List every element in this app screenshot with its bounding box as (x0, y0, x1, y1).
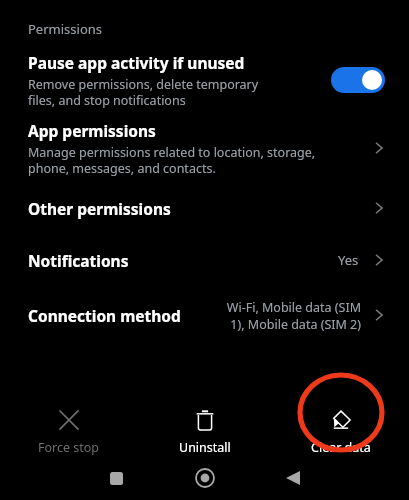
staticText: Uninstall (179, 439, 231, 456)
button[interactable]: Pause app activity if unused (0, 46, 409, 114)
button[interactable]: Connection method (0, 286, 409, 344)
button[interactable]: Clear data (273, 407, 409, 456)
staticText: Remove permissions, delete temporary fil… (28, 76, 259, 108)
button[interactable]: App permissions (0, 114, 409, 182)
button[interactable]: Back (275, 460, 311, 496)
staticText: Manage permissions related to location, … (28, 144, 316, 176)
button[interactable]: Recents (98, 460, 134, 496)
other: Open (365, 194, 393, 222)
staticText: App permissions (28, 120, 156, 141)
staticText: Other permissions (28, 198, 365, 219)
staticText: Yes (338, 251, 359, 269)
staticText: Wi-Fi, Mobile data (SIM 1), Mobile data … (226, 299, 361, 332)
other: Open (365, 246, 393, 274)
button[interactable]: Home (187, 460, 223, 496)
button[interactable]: Force stop (0, 407, 137, 456)
other: Open (365, 134, 393, 162)
staticText: Clear data (311, 439, 371, 456)
other: Open (365, 301, 393, 329)
staticText: Permissions (28, 20, 103, 38)
staticText: Notifications (28, 250, 338, 271)
button[interactable]: Pause app activity toggle (331, 67, 385, 93)
staticText: Connection method (28, 305, 181, 326)
staticText: Force stop (38, 439, 100, 456)
staticText: Pause app activity if unused (28, 52, 245, 73)
button[interactable]: Uninstall (137, 407, 273, 456)
button[interactable]: Other permissions (0, 182, 409, 234)
button[interactable]: Notifications (0, 234, 409, 286)
